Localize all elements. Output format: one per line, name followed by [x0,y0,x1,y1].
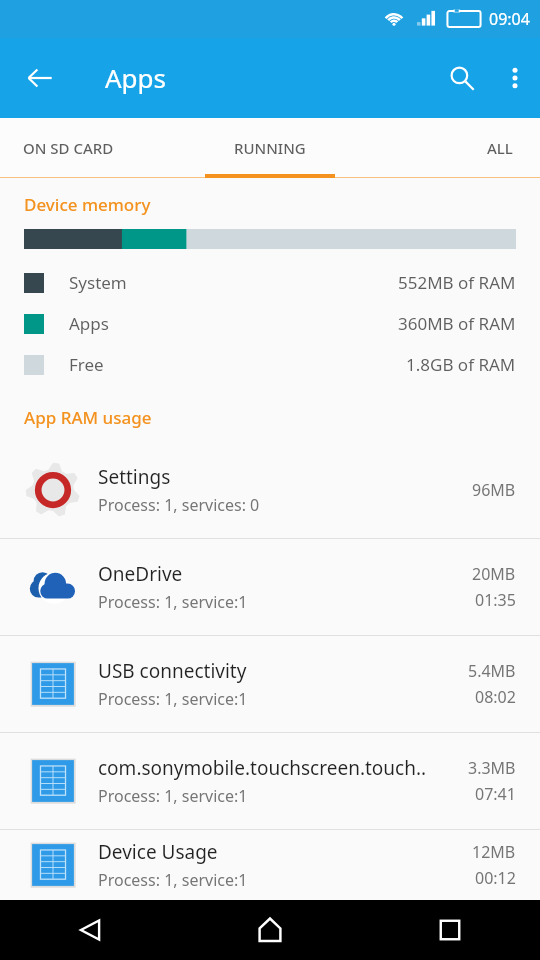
staticText: ALL [487,138,513,158]
staticText: USB connectivity [98,658,247,684]
staticText: 00:12 [475,867,516,889]
staticText: 96MB [472,479,516,501]
staticText: 3.3MB [468,757,516,779]
staticText: 20MB [472,563,516,585]
button[interactable]: RUNNING [170,118,370,178]
staticText: 08:02 [475,686,516,708]
staticText: Free [69,353,104,376]
button[interactable]: Apps [0,303,540,344]
staticText: 12MB [472,841,516,863]
button[interactable]: Home [180,900,360,960]
button[interactable]: Search [434,50,490,106]
button[interactable]: ALL [400,118,540,178]
staticText: com.sonymobile.touchscreen.touch.. [98,755,427,781]
staticText: RUNNING [234,138,306,158]
staticText: Settings [98,464,171,490]
staticText: OneDrive [98,561,183,587]
staticText: 01:35 [475,589,516,611]
button[interactable]: Settings [0,442,540,539]
staticText: 09:04 [489,8,530,30]
button[interactable]: Device Usage [0,830,540,900]
staticText: Process: 1, service:1 [98,591,248,613]
button[interactable]: USB connectivity [0,636,540,733]
staticText: 07:41 [475,783,516,805]
button[interactable]: Recent apps [360,900,540,960]
staticText: ON SD CARD [23,138,114,158]
staticText: 1.8GB of RAM [406,353,516,376]
staticText: Apps [69,312,109,335]
staticText: 360MB of RAM [398,312,516,335]
staticText: 552MB of RAM [398,271,516,294]
staticText: Process: 1, service:1 [98,869,248,891]
staticText: Process: 1, services: 0 [98,494,260,516]
staticText: 5.4MB [468,660,516,682]
button[interactable]: Back [0,900,180,960]
button[interactable]: ON SD CARD [0,118,168,178]
staticText: Device Usage [98,839,218,865]
staticText: Process: 1, service:1 [98,688,248,710]
staticText: App RAM usage [24,406,152,429]
button[interactable]: More options [490,53,540,103]
button[interactable]: com.sonymobile.touchscreen.touch.. [0,733,540,830]
button[interactable]: Back [12,50,68,106]
staticText: Device memory [24,193,151,216]
button[interactable]: Free [0,344,540,385]
staticText: Apps [105,60,167,95]
button[interactable]: System [0,262,540,303]
staticText: Process: 1, service:1 [98,785,248,807]
staticText: System [69,271,127,294]
button[interactable]: OneDrive [0,539,540,636]
